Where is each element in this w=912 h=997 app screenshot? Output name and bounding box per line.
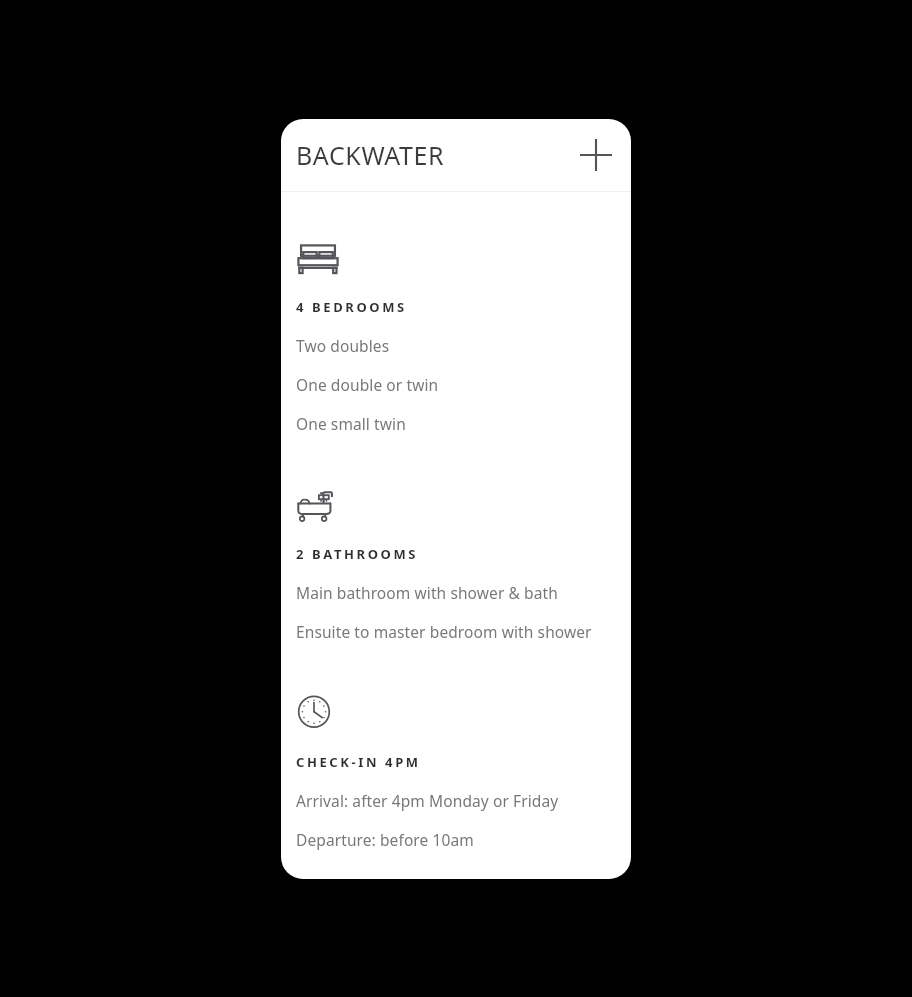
staticText: 2 BATHROOMS xyxy=(296,545,419,563)
staticText: BACKWATER xyxy=(296,138,445,172)
button[interactable]: BACKWATER xyxy=(296,138,445,172)
staticText: Main bathroom with shower & bath xyxy=(296,582,558,603)
staticText: Arrival: after 4pm Monday or Friday xyxy=(296,790,559,811)
other: Bedrooms xyxy=(296,243,340,275)
other: Bathrooms xyxy=(296,484,338,522)
staticText: Two doubles xyxy=(296,335,390,356)
staticText: One double or twin xyxy=(296,374,439,395)
staticText: Ensuite to master bedroom with shower xyxy=(296,621,592,642)
staticText: CHECK-IN 4PM xyxy=(296,753,421,771)
staticText: Departure: before 10am xyxy=(296,829,474,850)
button[interactable]: Add xyxy=(573,132,619,178)
staticText: One small twin xyxy=(296,413,406,434)
staticText: 4 BEDROOMS xyxy=(296,298,407,316)
other: Check-in time xyxy=(296,692,332,730)
